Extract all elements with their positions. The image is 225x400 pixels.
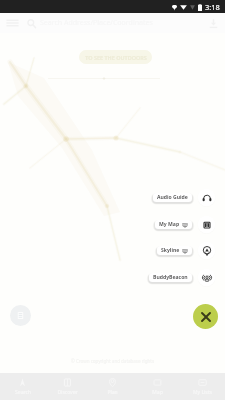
button[interactable]: Skyline [197,241,216,260]
button[interactable]: Audio Guide [153,193,192,202]
button[interactable]: My Map [197,215,216,234]
button[interactable]: BuddyBeacon [149,273,192,282]
staticText: Map [152,389,163,396]
staticText: TO SEE THE OUTDOORS [85,54,147,61]
staticText: Discover [57,389,78,396]
button[interactable]: Map legend [10,305,31,326]
button[interactable]: TO SEE THE OUTDOORS [79,50,152,64]
staticText: Plan [107,389,118,396]
staticText: BuddyBeacon [153,274,188,281]
button[interactable]: Close menu [193,304,218,329]
staticText: © Crown copyright and database rights [71,358,155,364]
staticText: Search [15,389,31,396]
staticText: Audio Guide [157,194,188,201]
button[interactable]: Skyline [157,246,192,255]
button[interactable]: BuddyBeacon [197,268,216,287]
button[interactable]: Audio Guide [197,188,216,207]
staticText: Skyline [161,247,180,254]
staticText: 3:18 [205,2,220,12]
button[interactable]: My Map [155,220,192,229]
staticText: My Lists [193,389,212,396]
staticText: My Map [159,221,180,228]
button[interactable]: Open navigation menu [2,13,22,33]
